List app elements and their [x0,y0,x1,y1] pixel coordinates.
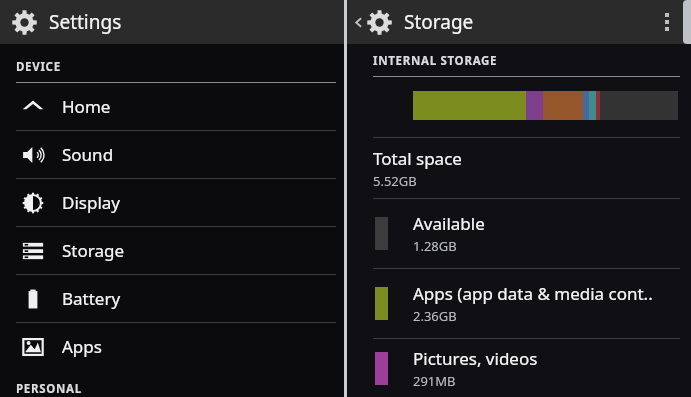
button[interactable]: Display [0,179,344,226]
staticText: Pictures, videos [413,347,538,370]
button[interactable]: Available [347,199,691,268]
staticText: DEVICE [16,59,61,75]
staticText: 1.28GB [413,237,457,255]
button[interactable]: More options [655,0,679,44]
staticText: Settings [49,9,122,35]
staticText: 2.36GB [413,307,457,325]
staticText: INTERNAL STORAGE [373,53,498,69]
staticText: Storage [404,9,474,35]
staticText: 291MB [413,372,456,390]
staticText: Battery [62,287,121,310]
button[interactable]: Home [0,83,344,130]
staticText: Apps (app data & media cont.. [413,282,653,305]
staticText: 5.52GB [373,172,417,190]
staticText: Home [62,95,111,118]
staticText: Display [62,191,120,214]
button[interactable]: Storage [0,227,344,274]
button[interactable]: Settings [0,0,344,44]
staticText: Available [413,212,485,235]
button[interactable]: Apps [0,323,344,370]
button[interactable]: Back [347,0,474,44]
button[interactable]: Apps (app data & media cont.. [347,269,691,338]
button[interactable]: Total space [347,138,691,198]
button[interactable]: Battery [0,275,344,322]
staticText: PERSONAL [16,381,82,397]
button[interactable]: Sound [0,131,344,178]
other: Back [352,16,365,29]
staticText: Sound [62,143,114,166]
staticText: Storage [62,239,125,262]
staticText: Apps [62,335,102,358]
staticText: Total space [373,147,462,170]
button[interactable]: Pictures, videos [347,339,691,397]
